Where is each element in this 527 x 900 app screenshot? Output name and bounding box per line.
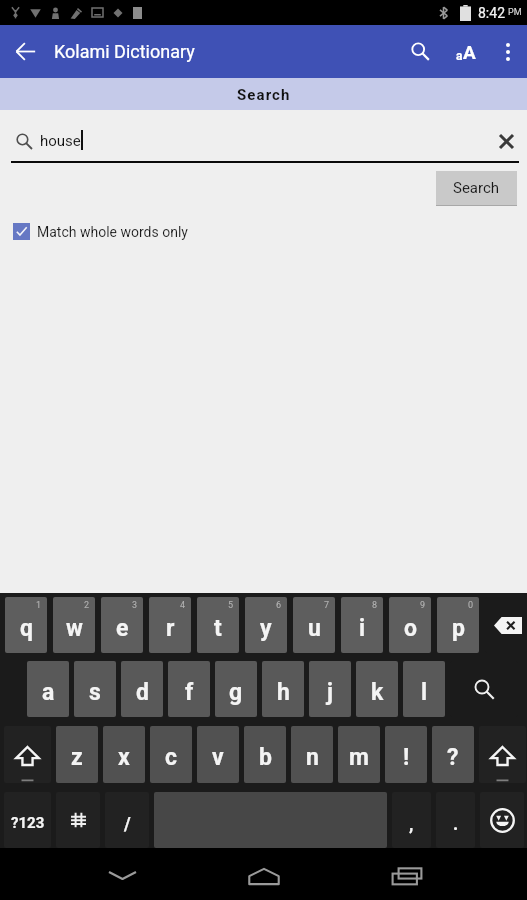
staticText: a — [456, 49, 463, 63]
staticText: . — [453, 813, 459, 834]
button[interactable]: ?123 — [4, 792, 51, 848]
staticText: x — [118, 744, 130, 771]
button[interactable]: , — [392, 792, 431, 848]
staticText: ! — [403, 744, 410, 771]
staticText: u — [308, 615, 321, 642]
button[interactable]: Emoji — [480, 792, 524, 848]
staticText: y — [260, 615, 272, 642]
button[interactable]: Hide keyboard — [99, 848, 146, 900]
staticText: o — [404, 615, 417, 642]
staticText: ?123 — [11, 814, 45, 832]
button[interactable]: n — [291, 726, 333, 783]
staticText: z — [71, 744, 83, 771]
button[interactable]: p — [437, 597, 479, 653]
button[interactable]: z — [56, 726, 98, 783]
button[interactable]: d — [121, 661, 163, 717]
staticText: f — [185, 679, 194, 706]
button[interactable]: Search — [436, 171, 517, 206]
staticText: 4 — [180, 600, 186, 611]
button[interactable]: o — [389, 597, 431, 653]
button[interactable]: ? — [432, 726, 474, 783]
button[interactable]: y — [245, 597, 287, 653]
staticText: / — [124, 813, 131, 834]
staticText: g — [229, 679, 243, 706]
staticText: c — [165, 744, 177, 771]
staticText: 3 — [132, 600, 138, 611]
button[interactable]: Recent apps — [383, 848, 431, 900]
staticText: 0 — [468, 600, 474, 611]
button[interactable]: j — [309, 661, 351, 717]
button[interactable]: Change language — [56, 792, 100, 848]
button[interactable]: l — [403, 661, 445, 717]
button[interactable]: Search — [0, 78, 527, 110]
button[interactable]: w — [53, 597, 95, 653]
button[interactable]: . — [436, 792, 475, 848]
staticText: Search — [237, 86, 291, 104]
button[interactable]: h — [262, 661, 304, 717]
staticText: 1 — [36, 600, 42, 611]
button[interactable]: e — [101, 597, 143, 653]
staticText: m — [349, 744, 369, 771]
button[interactable]: a — [27, 661, 69, 717]
staticText: ? — [447, 744, 459, 771]
button[interactable]: v — [197, 726, 239, 783]
staticText: 6 — [276, 600, 282, 611]
staticText: , — [409, 813, 414, 834]
staticText: PM — [508, 7, 522, 18]
staticText: 9 — [420, 600, 426, 611]
staticText: s — [89, 679, 101, 706]
button[interactable]: x — [103, 726, 145, 783]
button[interactable]: b — [244, 726, 286, 783]
staticText: 7 — [324, 600, 330, 611]
staticText: b — [259, 744, 272, 771]
staticText: A — [463, 41, 476, 63]
button[interactable]: Shift — [4, 726, 51, 783]
button[interactable]: ! — [385, 726, 427, 783]
staticText: d — [136, 679, 149, 706]
button[interactable]: f — [168, 661, 210, 717]
button[interactable]: g — [215, 661, 257, 717]
button[interactable]: u — [293, 597, 335, 653]
button[interactable]: Clear text — [491, 126, 521, 156]
staticText: a — [42, 679, 55, 706]
staticText: 5 — [228, 600, 234, 611]
staticText: w — [66, 615, 83, 642]
staticText: e — [116, 615, 129, 642]
button[interactable]: q — [5, 597, 47, 653]
staticText: 8 — [372, 600, 378, 611]
button[interactable]: / — [105, 792, 149, 848]
staticText: t — [214, 615, 222, 642]
staticText: p — [452, 615, 465, 642]
staticText: Match whole words only — [37, 224, 188, 240]
button[interactable]: Match whole words only — [13, 223, 188, 240]
button[interactable]: i — [341, 597, 383, 653]
staticText: j — [327, 679, 333, 706]
button[interactable]: Home — [240, 848, 288, 900]
staticText: Search — [453, 179, 500, 197]
button[interactable]: More options — [489, 25, 527, 78]
staticText: n — [306, 744, 319, 771]
staticText: h — [277, 679, 290, 706]
button[interactable]: c — [150, 726, 192, 783]
button[interactable]: Text size — [443, 25, 489, 78]
staticText: q — [20, 615, 33, 642]
button[interactable]: Backspace — [485, 597, 527, 653]
button[interactable]: t — [197, 597, 239, 653]
button[interactable]: m — [338, 726, 380, 783]
button[interactable]: Search — [450, 661, 518, 717]
staticText: l — [421, 679, 428, 706]
staticText: house — [40, 132, 81, 150]
button[interactable]: Search — [397, 25, 443, 78]
button[interactable]: r — [149, 597, 191, 653]
button[interactable]: k — [356, 661, 398, 717]
button[interactable]: Shift — [479, 726, 526, 783]
staticText: v — [212, 744, 224, 771]
staticText: 8:42 — [478, 5, 505, 21]
staticText: 2 — [84, 600, 90, 611]
staticText: Kolami Dictionary — [54, 41, 195, 62]
button[interactable]: s — [74, 661, 116, 717]
staticText: r — [166, 615, 175, 642]
staticText: i — [359, 615, 366, 642]
button[interactable]: Back — [0, 25, 50, 78]
